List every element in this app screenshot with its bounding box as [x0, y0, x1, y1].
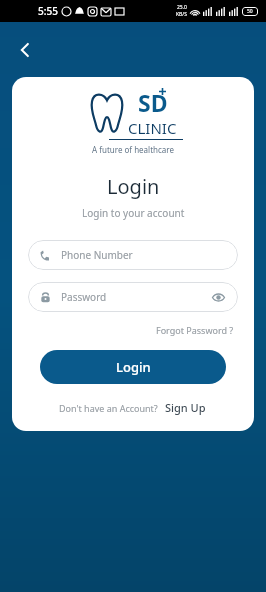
- staticText: SD: [138, 87, 168, 118]
- staticText: Password: [61, 290, 107, 304]
- staticText: Login: [116, 358, 151, 376]
- staticText: Login: [107, 173, 160, 200]
- button[interactable]: Show password: [210, 289, 226, 305]
- staticText: Don't have an Account?: [59, 402, 158, 414]
- staticText: 25.0: [177, 4, 187, 11]
- staticText: Sign Up: [165, 400, 206, 415]
- button[interactable]: Phone Number: [28, 240, 238, 270]
- staticText: 50: [247, 8, 253, 15]
- staticText: Forgot Password ?: [156, 324, 234, 336]
- button[interactable]: Sign Up: [163, 398, 208, 417]
- staticText: KB/S: [176, 11, 187, 18]
- staticText: A future of healthcare: [92, 144, 174, 155]
- staticText: Login to your account: [82, 206, 185, 220]
- staticText: Phone Number: [61, 248, 133, 262]
- button[interactable]: Login: [40, 350, 226, 384]
- staticText: CLINIC: [128, 118, 177, 138]
- button[interactable]: Back: [8, 33, 42, 67]
- staticText: 5:55: [38, 4, 58, 18]
- button[interactable]: Password: [28, 282, 238, 312]
- button[interactable]: Forgot Password ?: [154, 322, 236, 338]
